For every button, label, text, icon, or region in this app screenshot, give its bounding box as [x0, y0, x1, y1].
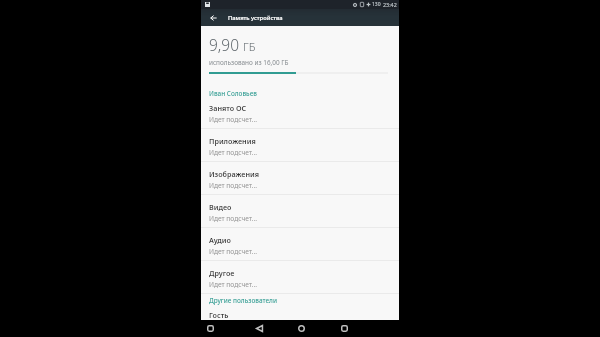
button[interactable]: Изображения — [201, 162, 399, 195]
staticText: Идет подсчет... — [209, 115, 257, 124]
button[interactable]: Занято ОС — [201, 96, 399, 129]
button[interactable]: Другое — [201, 261, 399, 294]
button[interactable]: Home — [294, 320, 308, 337]
staticText: Приложения — [209, 136, 256, 146]
staticText: Идет подсчет... — [209, 247, 257, 256]
staticText: 9,90 — [209, 34, 240, 55]
staticText: Память устройства — [228, 14, 283, 22]
button[interactable]: Гость — [209, 310, 229, 320]
button[interactable]: Keyboard — [203, 320, 217, 337]
button[interactable]: Видео — [201, 195, 399, 228]
staticText: Видео — [209, 202, 232, 212]
staticText: Идет подсчет... — [209, 214, 257, 223]
button[interactable]: Аудио — [201, 228, 399, 261]
staticText: Идет подсчет... — [209, 148, 257, 157]
staticText: Идет подсчет... — [209, 181, 257, 190]
staticText: Изображения — [209, 169, 260, 179]
button[interactable]: Другие пользователи — [209, 296, 277, 305]
staticText: Идет подсчет... — [209, 280, 257, 289]
button[interactable]: Recents — [337, 320, 351, 337]
staticText: Другое — [209, 268, 235, 278]
staticText: Занято ОС — [209, 103, 247, 113]
staticText: ГБ — [243, 39, 256, 54]
button[interactable]: Back — [204, 9, 223, 26]
button[interactable]: Иван Соловьев — [209, 89, 257, 98]
staticText: Аудио — [209, 235, 231, 245]
staticText: 23:42 — [383, 1, 397, 8]
button[interactable]: Приложения — [201, 129, 399, 162]
button[interactable]: Back — [252, 320, 266, 337]
staticText: 130 — [372, 1, 381, 8]
staticText: использовано из 16,00 ГБ — [209, 58, 289, 67]
